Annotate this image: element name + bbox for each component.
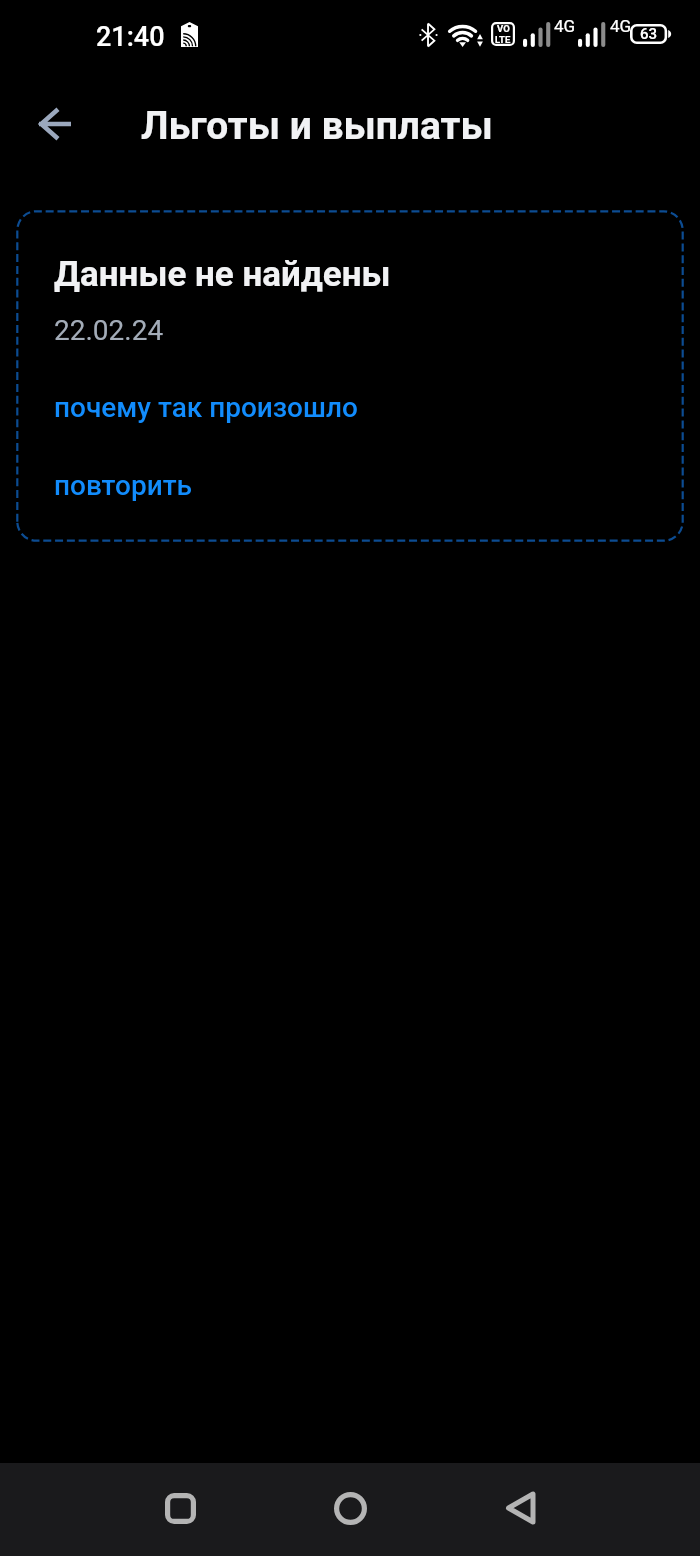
staticText: Льготы и выплаты: [141, 103, 493, 149]
staticText: 4G: [610, 16, 632, 36]
button[interactable]: почему так произошло: [54, 391, 358, 424]
staticText: почему так произошло: [54, 391, 358, 424]
button[interactable]: Back: [484, 1472, 556, 1544]
staticText: 4G: [554, 16, 576, 36]
staticText: LTE: [495, 34, 511, 45]
staticText: VO: [497, 23, 510, 34]
staticText: 63: [640, 25, 658, 43]
staticText: Данные не найдены: [54, 254, 391, 295]
staticText: повторить: [54, 469, 192, 502]
button[interactable]: повторить: [54, 469, 192, 502]
staticText: 21:40: [96, 21, 165, 53]
staticText: 22.02.24: [54, 314, 164, 347]
button[interactable]: Back: [14, 98, 96, 150]
button[interactable]: Home: [314, 1472, 386, 1544]
button[interactable]: Recent apps: [144, 1472, 216, 1544]
